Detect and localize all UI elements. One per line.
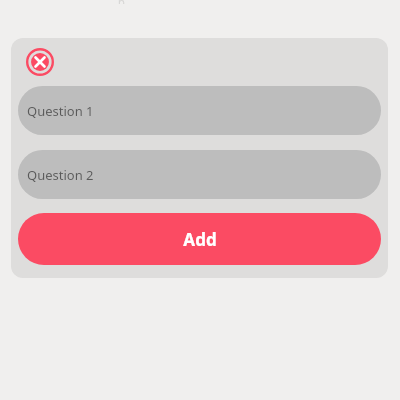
- button[interactable]: Add: [18, 213, 381, 265]
- staticText: p: [118, 0, 125, 4]
- staticText: Add: [183, 228, 217, 251]
- button[interactable]: Question 2: [18, 150, 381, 199]
- button[interactable]: Close: [26, 48, 54, 76]
- button[interactable]: Question 1: [18, 86, 381, 135]
- staticText: Question 1: [27, 102, 94, 120]
- staticText: Question 2: [27, 166, 94, 184]
